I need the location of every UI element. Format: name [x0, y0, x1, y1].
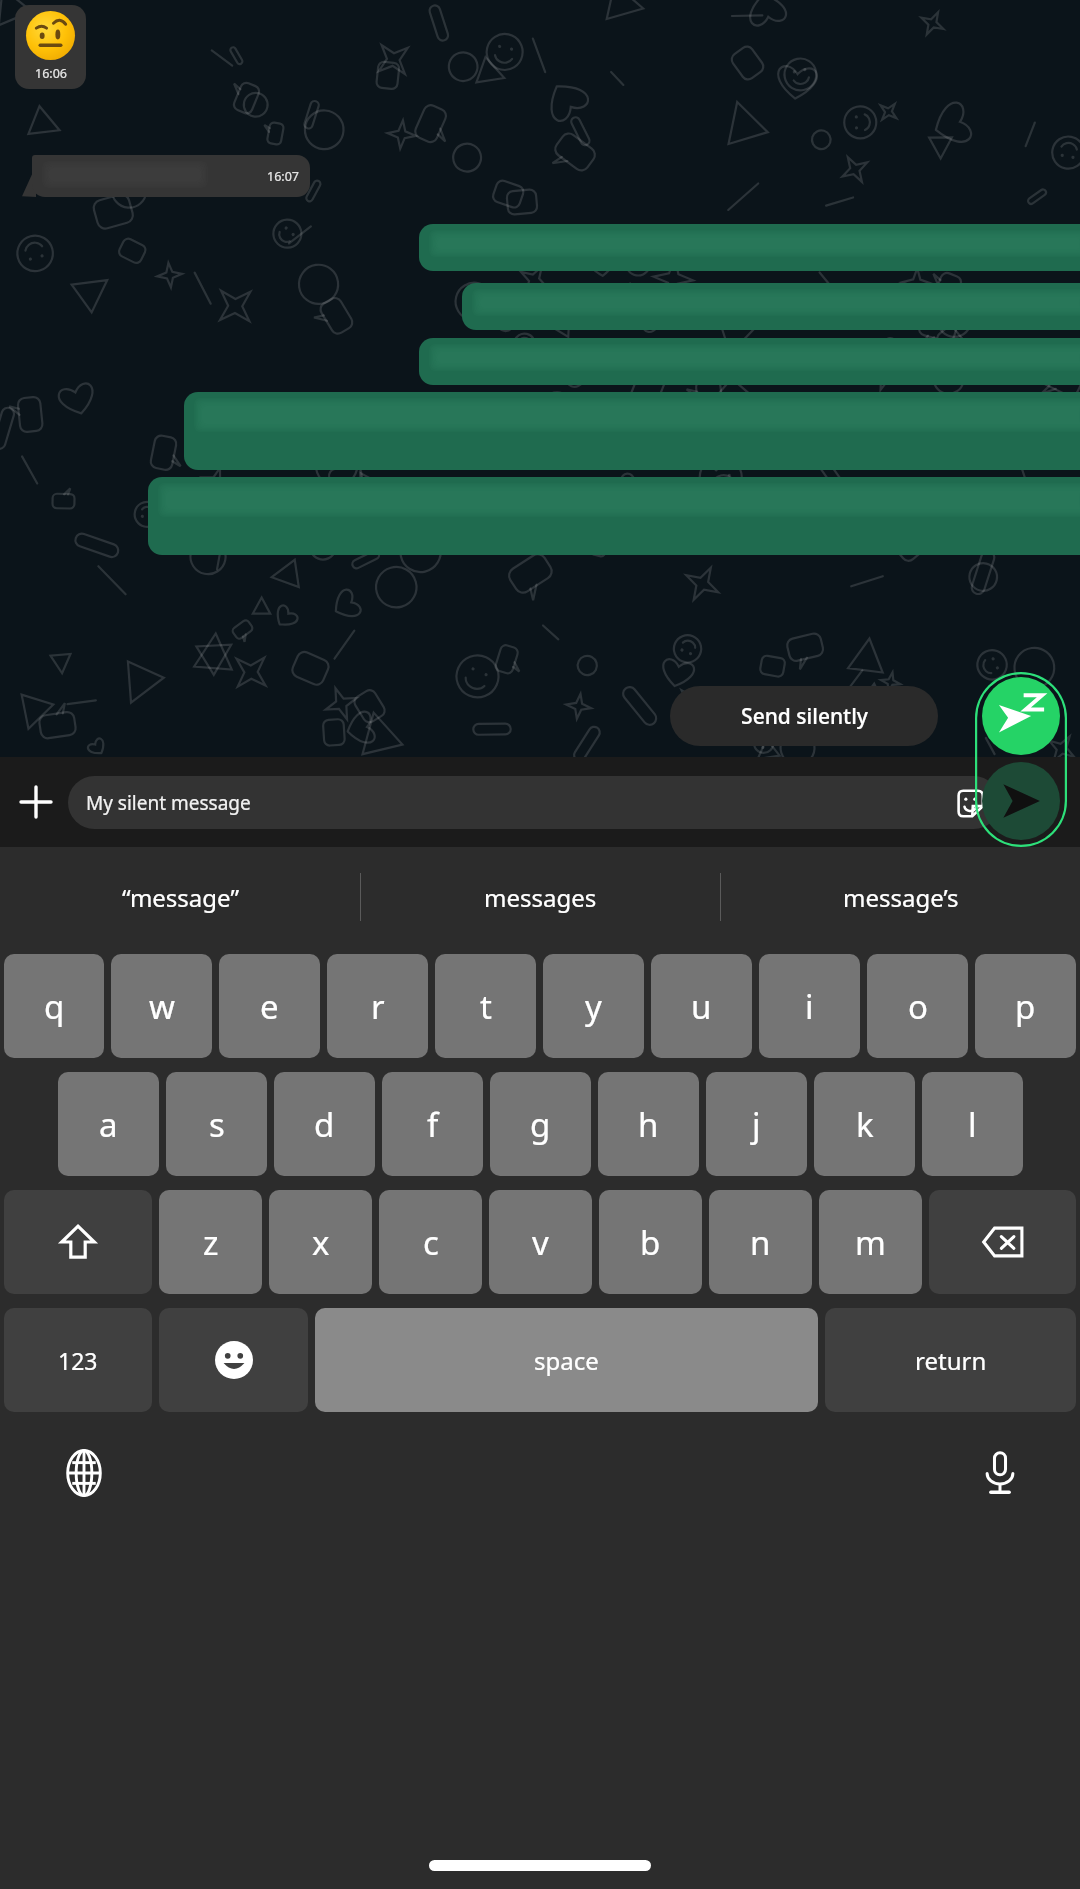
staticText: Send silently [741, 702, 868, 731]
button[interactable]: d [274, 1072, 375, 1176]
button[interactable]: v [489, 1190, 592, 1294]
staticText: message’s [843, 881, 959, 914]
staticText: r [371, 984, 385, 1029]
staticText: messages [484, 881, 597, 914]
staticText: a [99, 1102, 118, 1147]
button[interactable]: n [709, 1190, 812, 1294]
button[interactable]: Shift [4, 1190, 152, 1294]
staticText: “message” [122, 881, 239, 914]
button[interactable]: 123 [4, 1308, 152, 1412]
button[interactable]: j [706, 1072, 807, 1176]
button[interactable]: a [58, 1072, 159, 1176]
button[interactable]: Stickers [954, 787, 986, 819]
staticText: h [638, 1102, 659, 1147]
staticText: s [209, 1102, 225, 1147]
staticText: return [915, 1344, 987, 1377]
button[interactable]: u [651, 954, 752, 1058]
button[interactable]: message’s [721, 847, 1080, 947]
button[interactable]: Voice input [968, 1441, 1032, 1505]
button[interactable]: Send silently [670, 686, 938, 746]
button[interactable]: q [4, 954, 104, 1058]
staticText: j [752, 1102, 761, 1147]
button[interactable]: z [159, 1190, 262, 1294]
button[interactable]: r [327, 954, 428, 1058]
staticText: w [149, 984, 175, 1029]
staticText: l [968, 1102, 977, 1147]
button[interactable]: Attach [10, 776, 62, 828]
staticText: q [44, 984, 65, 1029]
button[interactable]: 16:09 [462, 283, 1080, 330]
button[interactable]: x [269, 1190, 372, 1294]
button[interactable]: messages [361, 847, 720, 947]
button[interactable]: p [975, 954, 1076, 1058]
staticText: e [260, 984, 279, 1029]
staticText: 123 [58, 1345, 98, 1376]
button[interactable]: g [490, 1072, 591, 1176]
staticText: k [856, 1102, 874, 1147]
button[interactable]: i [759, 954, 860, 1058]
button[interactable]: h [598, 1072, 699, 1176]
button[interactable]: Change language [52, 1441, 116, 1505]
staticText: v [532, 1220, 549, 1265]
button[interactable]: Backspace [929, 1190, 1076, 1294]
staticText: z [203, 1220, 219, 1265]
button[interactable]: k [814, 1072, 915, 1176]
staticText: 16:06 [35, 65, 67, 82]
staticText: i [805, 984, 814, 1029]
staticText: m [855, 1220, 886, 1265]
button[interactable]: c [379, 1190, 482, 1294]
button[interactable]: Emoji [159, 1308, 308, 1412]
staticText: x [312, 1220, 330, 1265]
button[interactable]: Send silently [982, 677, 1060, 755]
button[interactable]: 16:09 [184, 392, 1080, 470]
staticText: p [1015, 984, 1036, 1029]
button[interactable]: My silent message [68, 776, 1000, 829]
button[interactable]: space [315, 1308, 818, 1412]
staticText: space [534, 1344, 599, 1377]
button[interactable]: o [867, 954, 968, 1058]
button[interactable]: 16:09 [148, 477, 1080, 555]
button[interactable]: 16:08 [419, 224, 1080, 271]
button[interactable]: w [111, 954, 212, 1058]
staticText: y [585, 984, 602, 1029]
button[interactable]: return [825, 1308, 1076, 1412]
staticText: b [640, 1220, 661, 1265]
button[interactable]: 16:09 [419, 338, 1080, 385]
button[interactable]: 16:07 [22, 155, 310, 197]
staticText: t [480, 984, 492, 1029]
staticText: My silent message [86, 790, 251, 816]
staticText: g [530, 1102, 551, 1147]
button[interactable]: b [599, 1190, 702, 1294]
button[interactable]: y [543, 954, 644, 1058]
button[interactable]: Send [982, 762, 1060, 840]
staticText: o [908, 984, 928, 1029]
staticText: u [691, 984, 712, 1029]
button[interactable]: e [219, 954, 320, 1058]
staticText: n [750, 1220, 771, 1265]
staticText: f [427, 1102, 439, 1147]
button[interactable]: f [382, 1072, 483, 1176]
staticText: 16:07 [267, 168, 299, 185]
button[interactable]: “message” [0, 847, 360, 947]
staticText: d [314, 1102, 335, 1147]
button[interactable]: 16:06 [15, 5, 86, 89]
button[interactable]: l [922, 1072, 1023, 1176]
button[interactable]: m [819, 1190, 922, 1294]
button[interactable]: s [166, 1072, 267, 1176]
staticText: c [423, 1220, 439, 1265]
button[interactable]: t [435, 954, 536, 1058]
